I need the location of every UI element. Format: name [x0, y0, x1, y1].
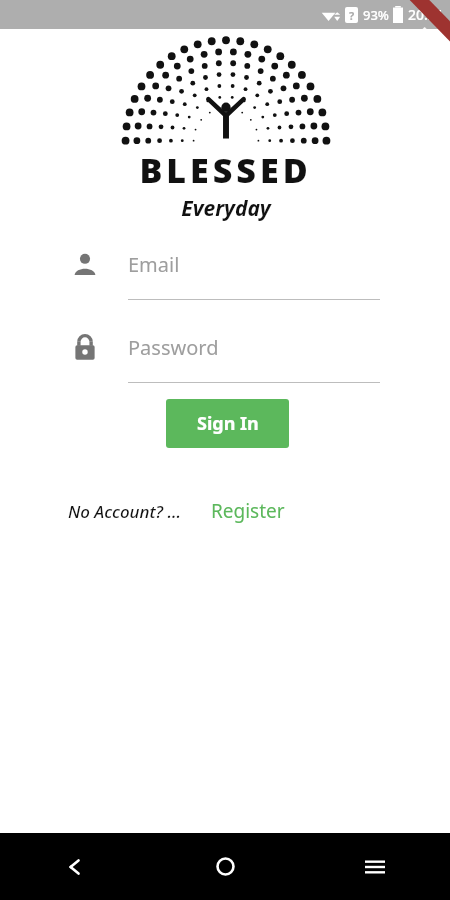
- button[interactable]: Home: [150, 833, 300, 900]
- button[interactable]: Back: [0, 833, 150, 900]
- button[interactable]: Password: [70, 334, 380, 383]
- button[interactable]: Register: [211, 498, 285, 524]
- staticText: BLESSED: [139, 147, 312, 193]
- staticText: Everyday: [181, 194, 271, 223]
- staticText: Email: [128, 251, 180, 278]
- button[interactable]: Email: [70, 251, 380, 300]
- staticText: DEBUG: [418, 24, 449, 55]
- staticText: 93%: [363, 6, 389, 24]
- staticText: Register: [211, 498, 285, 524]
- staticText: 20:21: [408, 5, 444, 24]
- staticText: Password: [128, 334, 219, 361]
- staticText: No Account? ...: [68, 500, 181, 523]
- button[interactable]: Sign In: [166, 399, 289, 448]
- staticText: Sign In: [197, 411, 259, 436]
- staticText: ?: [349, 8, 355, 23]
- button[interactable]: Recent apps: [300, 833, 450, 900]
